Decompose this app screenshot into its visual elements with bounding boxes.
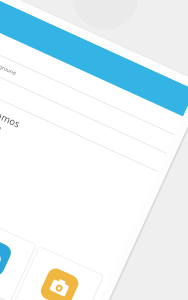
other: App promo screen	[0, 0, 188, 300]
button[interactable]: Phone app preview	[0, 0, 188, 300]
